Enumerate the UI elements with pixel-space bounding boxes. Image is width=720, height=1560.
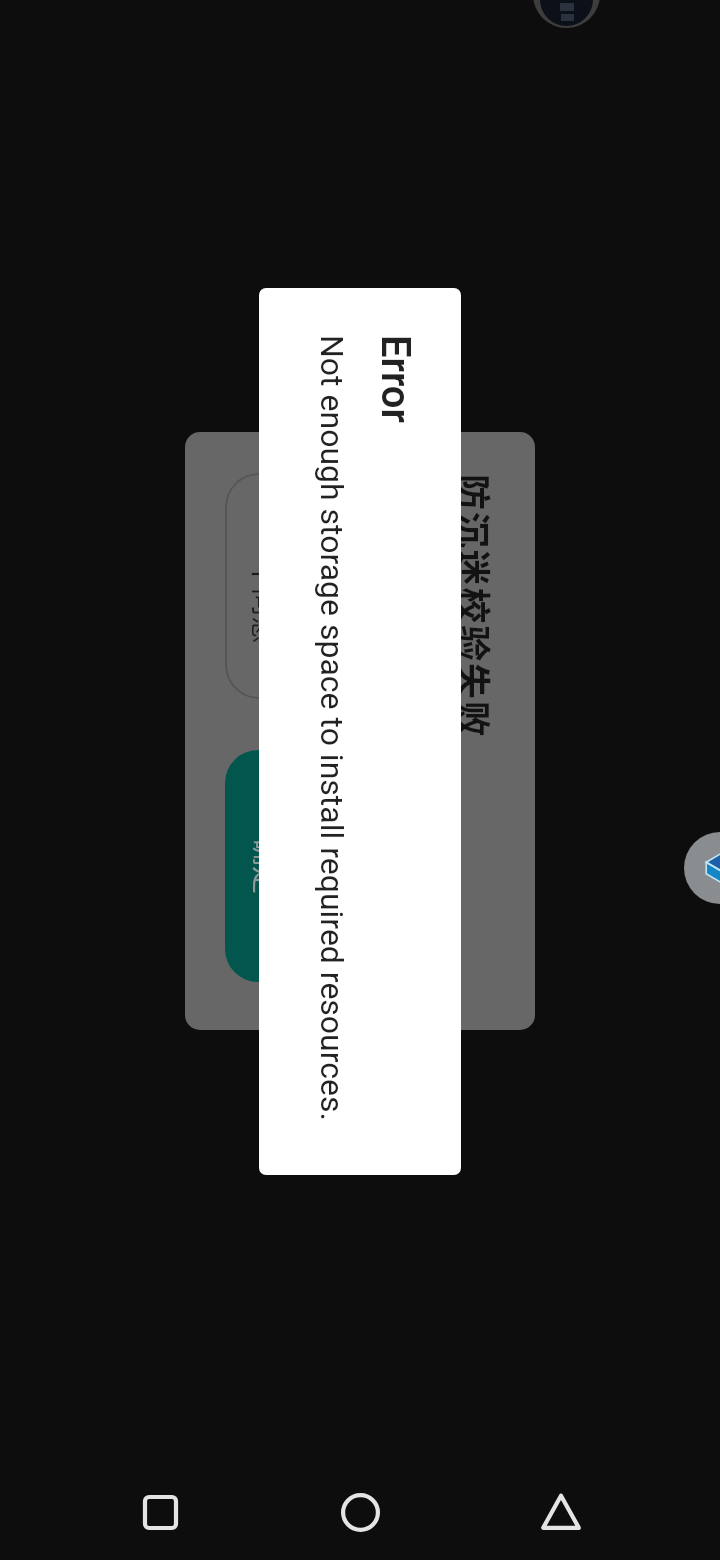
staticText: 确定 <box>246 838 287 895</box>
button[interactable]: Game tools <box>684 832 720 904</box>
button[interactable]: 确定 <box>225 750 295 982</box>
staticText: 不同意 <box>245 560 286 645</box>
button[interactable]: Home <box>312 1464 408 1560</box>
button[interactable]: 不同意 <box>225 473 295 699</box>
staticText: Not enough storage space to install requ… <box>313 335 351 1121</box>
button[interactable]: Assistant <box>533 0 600 28</box>
button[interactable]: Back <box>513 1464 609 1560</box>
button[interactable]: Recent apps <box>112 1464 208 1560</box>
staticText: 防沉迷校验失败 <box>449 474 501 739</box>
staticText: Error <box>372 335 419 423</box>
